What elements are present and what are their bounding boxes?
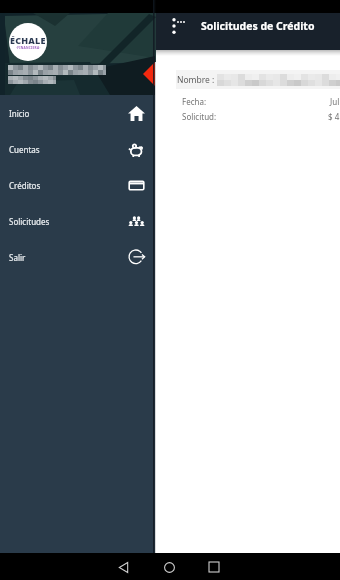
staticText: Solicitudes de Crédito: [201, 19, 315, 33]
button[interactable]: Inicio del sistema: [156, 554, 182, 580]
button[interactable]: Salir: [0, 239, 155, 275]
button[interactable]: Abrir menú: [163, 15, 185, 37]
button[interactable]: Solicitudes: [0, 203, 155, 239]
button[interactable]: Créditos: [0, 167, 155, 203]
staticText: Solicitud:: [182, 111, 217, 122]
button[interactable]: Nombre :: [176, 70, 340, 89]
staticText: Inicio: [9, 108, 30, 119]
button[interactable]: Cuentas: [0, 131, 155, 167]
staticText: Fecha:: [182, 96, 207, 107]
staticText: Nombre :: [177, 74, 215, 86]
staticText: Solicitudes: [9, 216, 50, 227]
button[interactable]: Atrás: [110, 554, 136, 580]
staticText: Cuentas: [9, 144, 40, 155]
staticText: Créditos: [9, 180, 41, 191]
staticText: $ 4: [328, 111, 340, 122]
button[interactable]: Fecha:: [182, 94, 340, 109]
staticText: ÉCHALE: [10, 34, 46, 46]
button[interactable]: Solicitud:: [182, 109, 340, 124]
staticText: ·FINANCIERA·: [16, 46, 41, 50]
staticText: Jul: [330, 96, 340, 107]
staticText: Salir: [9, 252, 26, 263]
button[interactable]: Recientes: [201, 554, 227, 580]
button[interactable]: Inicio: [0, 95, 155, 131]
